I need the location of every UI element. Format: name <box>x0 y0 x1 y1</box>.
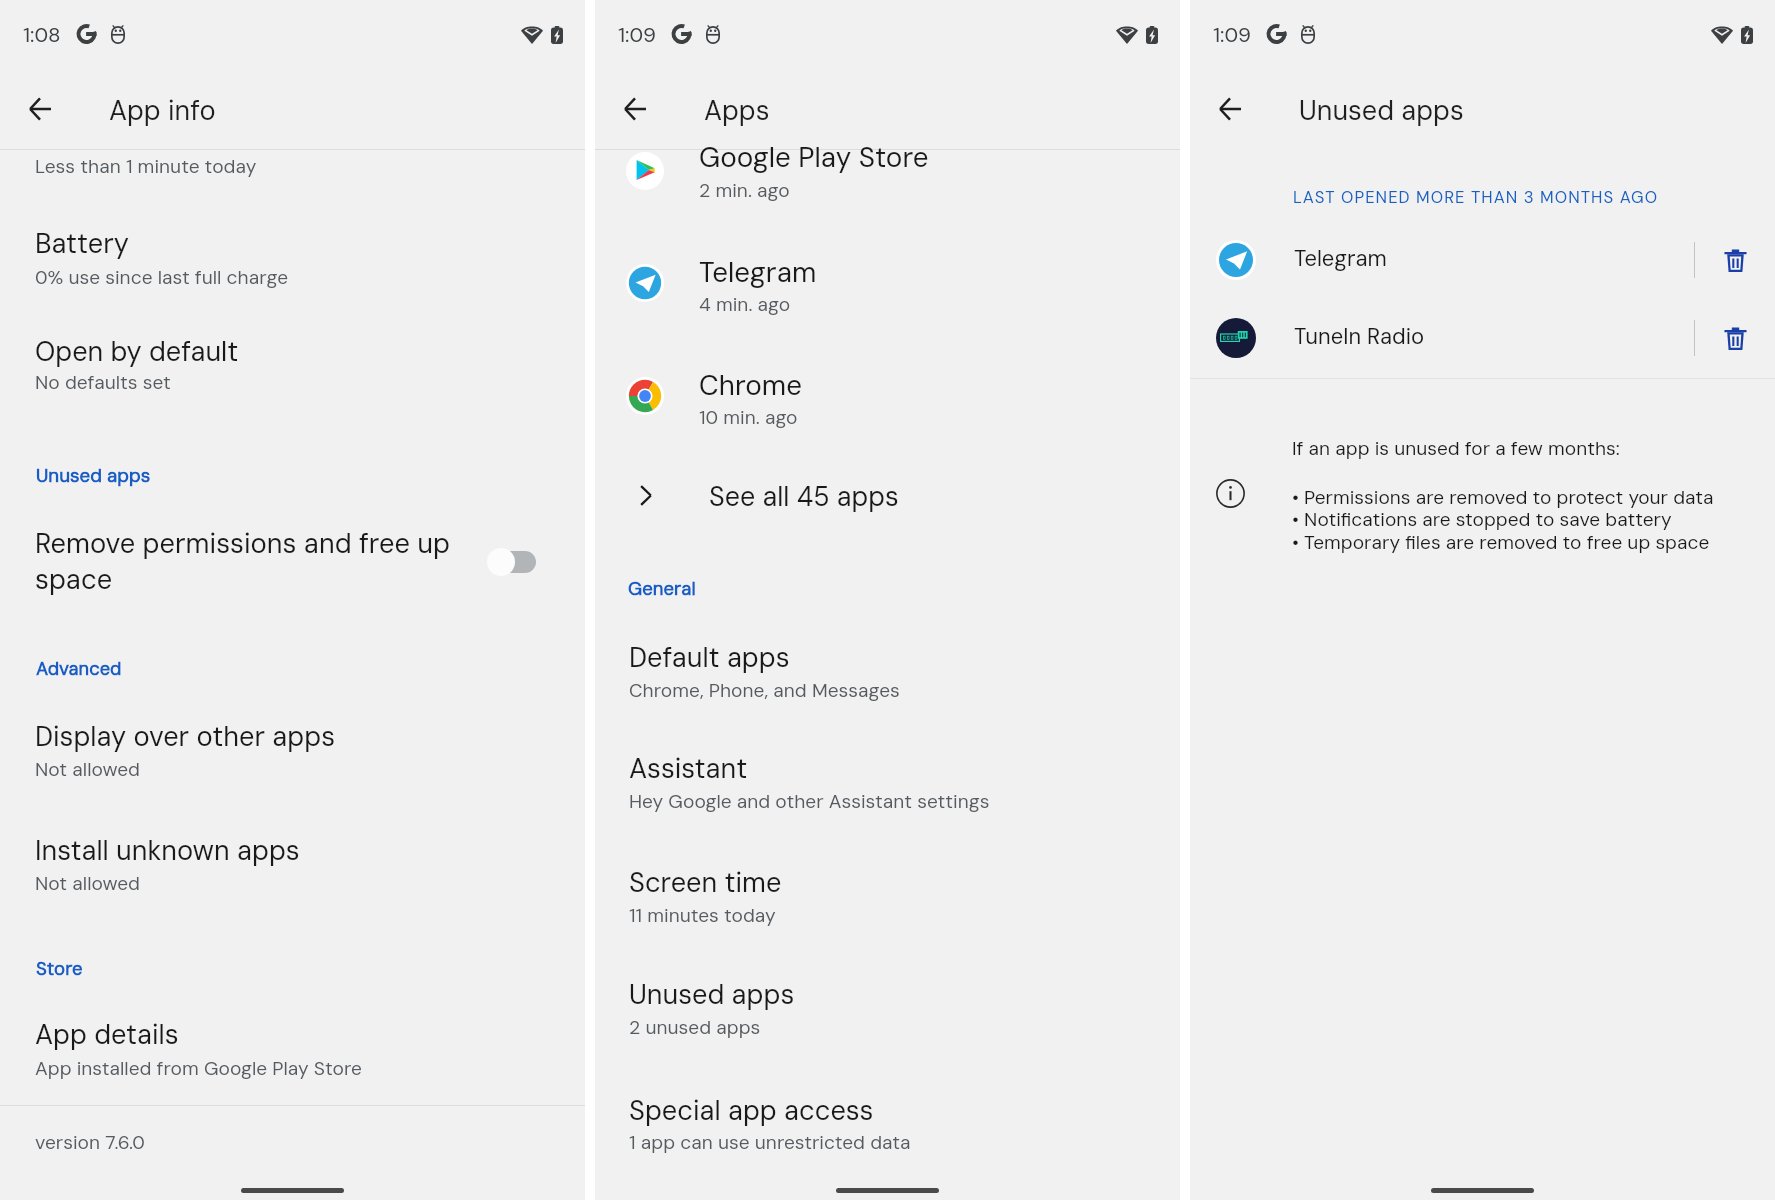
staticText: Remove permissions and free up space <box>35 526 450 597</box>
staticText: LAST OPENED MORE THAN 3 MONTHS AGO <box>1293 187 1659 209</box>
staticText: App details <box>35 1017 179 1052</box>
staticText: version 7.6.0 <box>35 1130 145 1155</box>
staticText: Unused apps <box>36 463 151 487</box>
staticText: Unused apps <box>629 977 795 1012</box>
staticText: 2 min. ago <box>699 178 790 203</box>
staticText: Chrome, Phone, and Messages <box>629 678 900 703</box>
staticText: Default apps <box>629 640 790 675</box>
staticText: 10 min. ago <box>699 405 798 430</box>
staticText: 11 minutes today <box>629 903 776 928</box>
button[interactable]: Delete TuneIn Radio <box>1709 313 1761 363</box>
staticText: See all 45 apps <box>709 479 899 514</box>
button[interactable] <box>27 1009 547 1087</box>
staticText: Assistant <box>629 751 748 786</box>
staticText: Less than 1 minute today <box>35 154 257 179</box>
button[interactable] <box>1190 221 1660 299</box>
staticText: Advanced <box>36 657 122 681</box>
staticText: Store <box>36 957 83 981</box>
staticText: Chrome <box>699 367 802 403</box>
button[interactable]: Back <box>15 84 65 134</box>
button[interactable] <box>621 1085 1141 1160</box>
button[interactable]: Delete Telegram <box>1709 235 1761 285</box>
staticText: 1 app can use unrestricted data <box>629 1130 911 1155</box>
staticText: • Permissions are removed to protect you… <box>1292 485 1714 555</box>
staticText: Apps <box>704 93 770 128</box>
staticText: If an app is unused for a few months: <box>1292 436 1620 461</box>
staticText: Google Play Store <box>699 139 929 175</box>
button[interactable] <box>609 356 1159 436</box>
staticText: 4 min. ago <box>699 292 791 317</box>
staticText: 2 unused apps <box>629 1015 761 1040</box>
staticText: Special app access <box>629 1093 874 1128</box>
button[interactable] <box>609 243 1159 323</box>
staticText: Unused apps <box>1299 93 1464 128</box>
staticText: App installed from Google Play Store <box>35 1056 362 1081</box>
staticText: Not allowed <box>35 757 140 782</box>
staticText: Screen time <box>629 865 782 900</box>
button[interactable] <box>609 462 1159 528</box>
staticText: General <box>628 577 696 601</box>
staticText: 0% use since last full charge <box>35 265 288 290</box>
staticText: Battery <box>35 226 129 261</box>
button[interactable] <box>27 218 547 296</box>
staticText: Hey Google and other Assistant settings <box>629 789 990 814</box>
button[interactable]: Back <box>1205 84 1255 134</box>
button[interactable] <box>609 131 1159 211</box>
button[interactable]: Remove permissions toggle <box>479 539 543 585</box>
button[interactable] <box>621 632 1141 708</box>
staticText: Not allowed <box>35 871 140 896</box>
button[interactable] <box>27 711 547 787</box>
button[interactable] <box>621 743 1141 819</box>
staticText: TuneIn Radio <box>1294 322 1425 351</box>
button[interactable] <box>27 825 547 901</box>
staticText: App info <box>109 93 216 128</box>
staticText: Telegram <box>699 254 817 290</box>
staticText: Install unknown apps <box>35 833 300 868</box>
staticText: Open by default <box>35 334 239 369</box>
button[interactable] <box>27 515 467 609</box>
staticText: Telegram <box>1294 244 1387 273</box>
button[interactable] <box>621 857 1141 933</box>
button[interactable] <box>621 969 1141 1045</box>
staticText: Display over other apps <box>35 719 335 754</box>
staticText: 1:09 <box>1213 21 1252 48</box>
button[interactable] <box>27 325 547 400</box>
button[interactable] <box>1190 299 1660 377</box>
button[interactable]: Back <box>610 84 660 134</box>
staticText: 1:09 <box>618 21 657 48</box>
staticText: 1:08 <box>23 21 61 48</box>
staticText: No defaults set <box>35 370 171 395</box>
